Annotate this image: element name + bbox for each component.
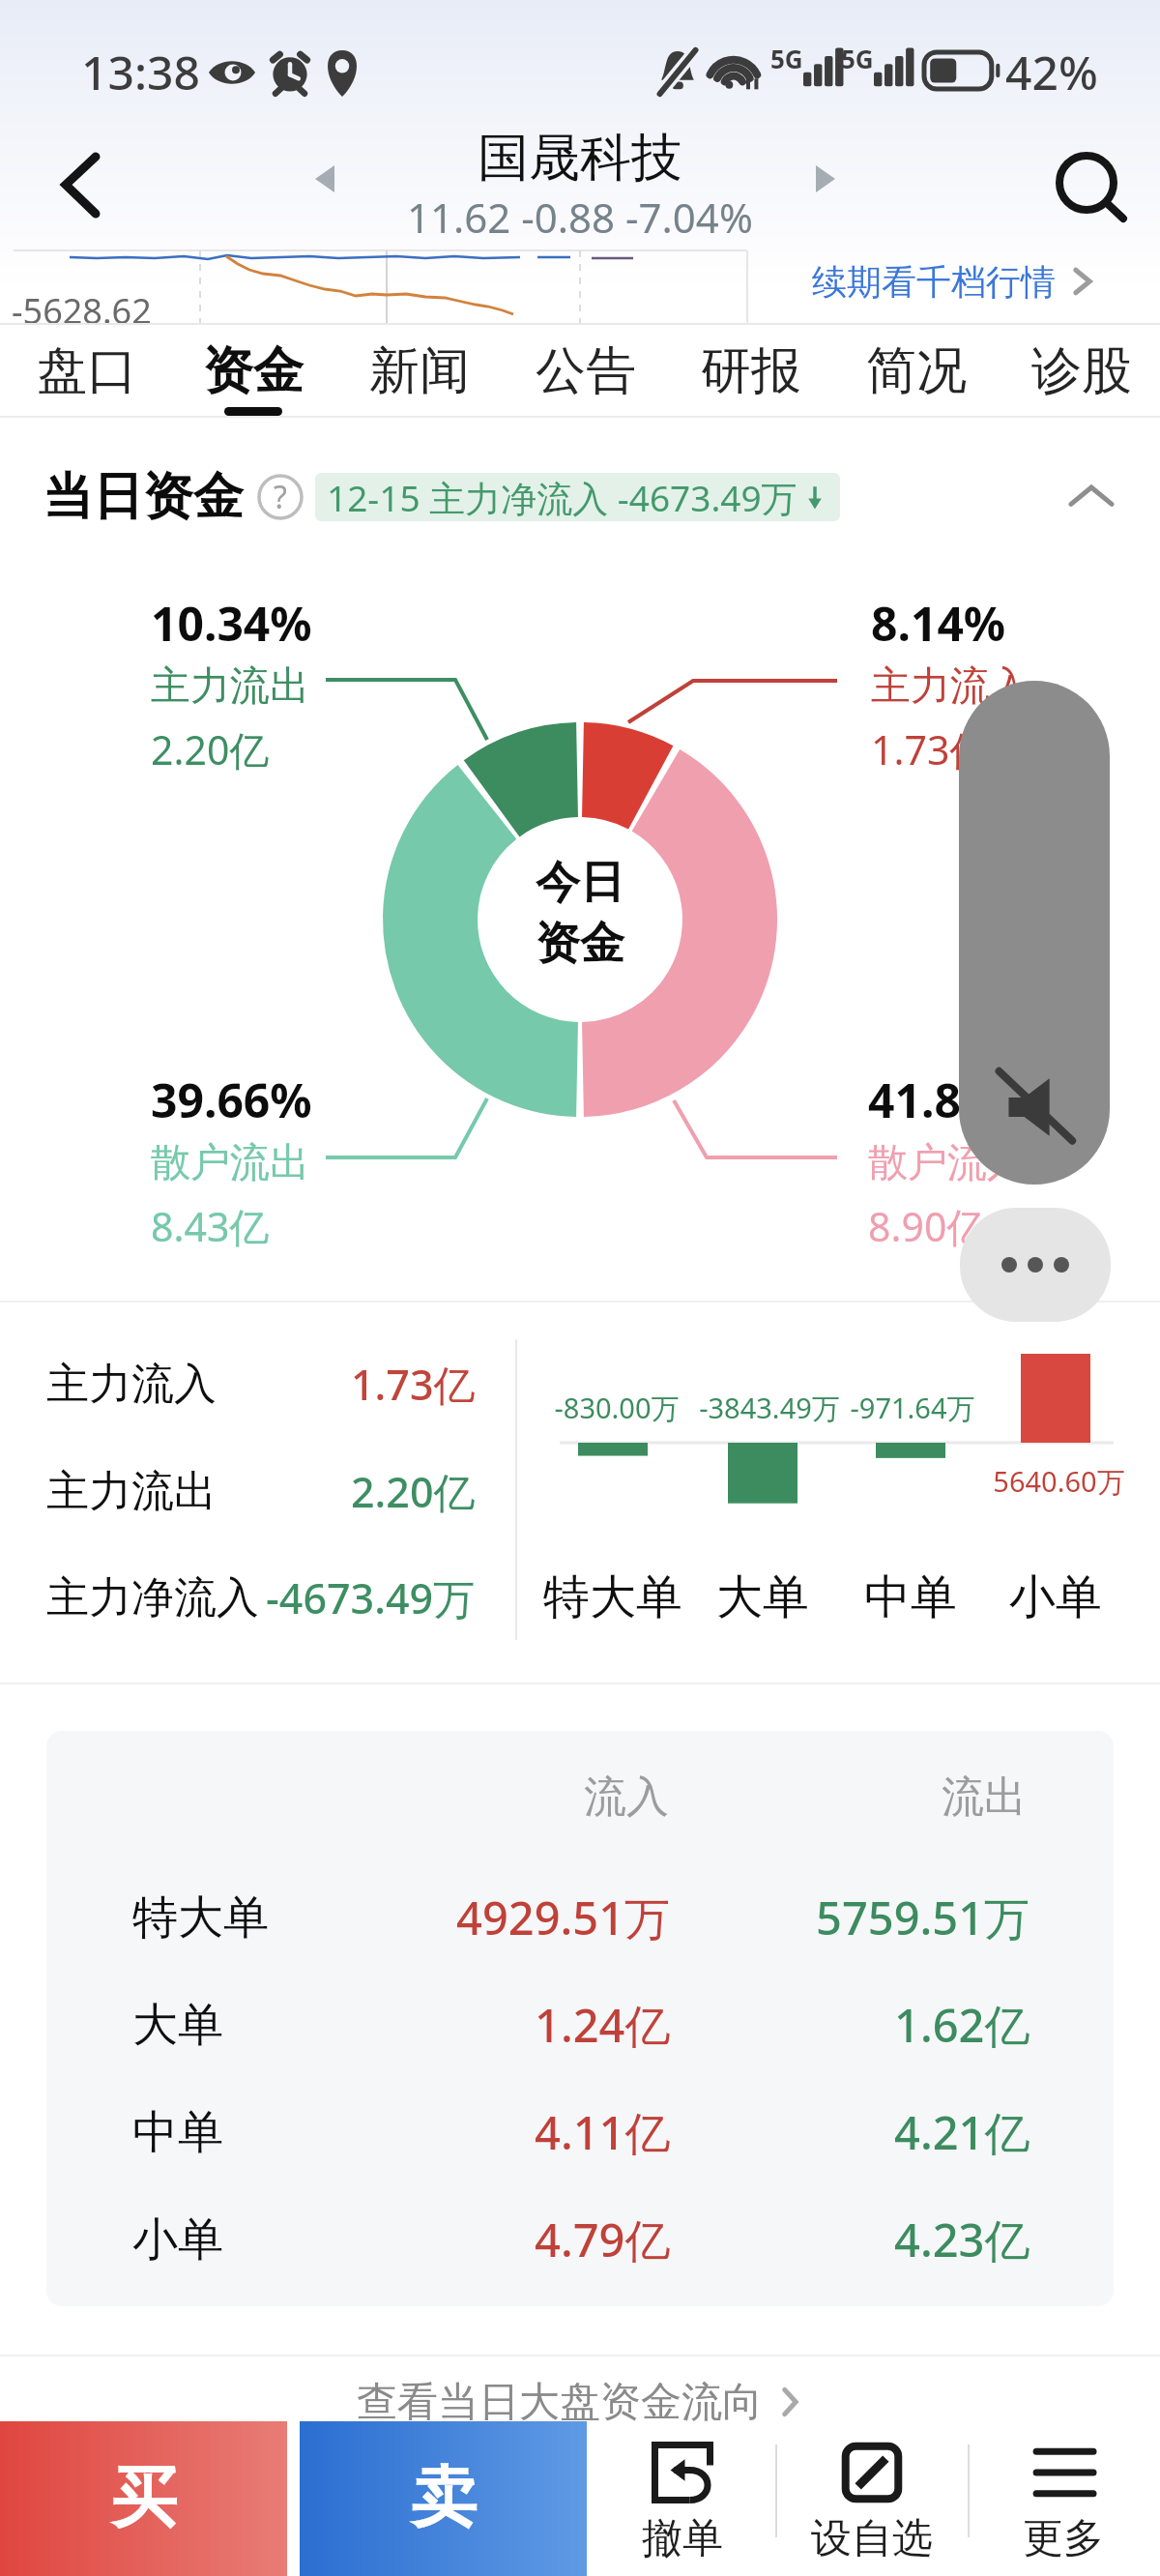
staticText: 续期看千档行情 [812, 260, 1056, 304]
staticText: 4.21亿 [894, 2101, 1030, 2163]
button[interactable]: 卖 [300, 2421, 587, 2576]
staticText: 1.24亿 [535, 1994, 671, 2056]
button[interactable]: 简况 [833, 324, 999, 416]
staticText: 主力流入 [871, 661, 1029, 712]
staticText: 散户流入 [868, 1138, 1027, 1188]
button[interactable]: Back [48, 140, 135, 227]
button[interactable]: 续期看千档行情 [748, 245, 1160, 318]
button[interactable]: 更多 [969, 2421, 1158, 2576]
staticText: 流出 [942, 1771, 1027, 1824]
staticText: 5G [841, 42, 874, 75]
staticText: 中单 [864, 1568, 957, 1626]
staticText: 今日 [536, 855, 624, 911]
button[interactable]: Mute [959, 681, 1110, 1185]
staticText: 11.62 -0.88 -7.04% [407, 190, 753, 245]
staticText: 4.11亿 [535, 2101, 671, 2163]
staticText: 4.79亿 [535, 2209, 671, 2270]
button[interactable]: 公告 [503, 324, 668, 416]
staticText: 主力流出 [151, 661, 309, 712]
staticText: 1.62亿 [894, 1994, 1030, 2056]
staticText: -971.64万 [850, 1389, 975, 1427]
staticText: 2.20亿 [151, 722, 270, 776]
button[interactable]: 新闻 [336, 324, 503, 416]
button[interactable]: 设自选 [777, 2421, 967, 2576]
button[interactable]: Collapse [1061, 467, 1121, 527]
staticText: 中单 [132, 2104, 223, 2161]
staticText: 诊股 [1031, 339, 1132, 403]
button[interactable]: 盘口 [4, 324, 170, 416]
staticText: 资金 [203, 339, 304, 403]
staticText: -4673.49万 [266, 1569, 476, 1626]
staticText: 小单 [132, 2211, 223, 2269]
staticText: 盘口 [37, 339, 137, 403]
staticText: 主力流出 [46, 1465, 217, 1518]
staticText: 5G [770, 42, 803, 75]
staticText: 39.66% [151, 1068, 312, 1131]
staticText: 卖 [411, 2457, 477, 2540]
staticText: 4.23亿 [894, 2209, 1030, 2270]
staticText: 8.43亿 [151, 1199, 270, 1253]
staticText: 8.90亿 [868, 1199, 987, 1253]
staticText: ? [274, 476, 287, 518]
staticText: 流入 [584, 1771, 669, 1824]
button[interactable]: More options [960, 1208, 1111, 1322]
staticText: 13:38 [81, 41, 200, 103]
staticText: 查看当日大盘资金流向 [357, 2377, 763, 2428]
staticText: 散户流出 [151, 1138, 309, 1188]
button[interactable]: 查看当日大盘资金流向 [357, 2371, 801, 2433]
staticText: 5640.60万 [993, 1462, 1125, 1501]
staticText: 大单 [132, 1997, 223, 2054]
staticText: 新闻 [369, 339, 470, 403]
button[interactable]: 研报 [668, 324, 833, 416]
staticText: 简况 [866, 339, 967, 403]
staticText: -3843.49万 [699, 1389, 840, 1427]
staticText: 特大单 [543, 1568, 682, 1626]
staticText: 5759.51万 [816, 1887, 1030, 1948]
staticText: 设自选 [811, 2513, 933, 2564]
staticText: 撤单 [642, 2513, 723, 2564]
button[interactable]: Previous stock [300, 151, 354, 205]
staticText: 小单 [1009, 1568, 1102, 1626]
button[interactable]: Search [1040, 137, 1137, 234]
staticText: 公告 [536, 339, 636, 403]
staticText: 41.86% [868, 1068, 1029, 1131]
button[interactable]: 撤单 [588, 2421, 777, 2576]
staticText: 主力净流入 [46, 1571, 259, 1625]
staticText: 12-15 主力净流入 -4673.49万 [327, 473, 797, 521]
staticText: 买 [111, 2457, 177, 2540]
staticText: 8.14% [871, 592, 1006, 655]
staticText: 4929.51万 [456, 1887, 671, 1948]
button[interactable]: 诊股 [999, 324, 1160, 416]
button[interactable]: Next stock [798, 151, 853, 205]
staticText: 1.73亿 [351, 1356, 476, 1413]
staticText: 国晟科技 [478, 126, 682, 190]
staticText: -5628.62 [12, 287, 152, 335]
staticText: 当日资金 [43, 465, 244, 529]
staticText: 10.34% [151, 592, 312, 655]
staticText: -830.00万 [554, 1389, 680, 1427]
staticText: 资金 [536, 916, 624, 972]
staticText: 42% [1005, 41, 1098, 103]
staticText: 大单 [716, 1568, 809, 1626]
staticText: 更多 [1023, 2513, 1104, 2564]
staticText: 2.20亿 [351, 1463, 476, 1520]
staticText: 研报 [701, 339, 801, 403]
button[interactable]: Help [257, 474, 304, 520]
button[interactable]: 资金 [170, 324, 336, 416]
staticText: 主力流入 [46, 1358, 217, 1411]
staticText: 1.73亿 [871, 722, 990, 776]
staticText: 特大单 [132, 1889, 269, 1947]
button[interactable]: 买 [0, 2421, 287, 2576]
